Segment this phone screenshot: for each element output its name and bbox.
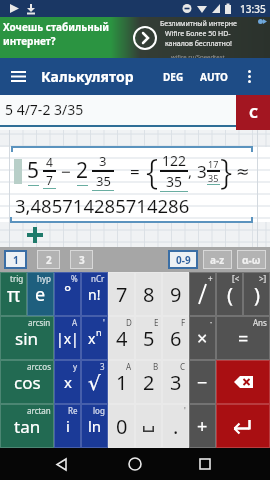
button[interactable]: D: [108, 316, 135, 360]
button[interactable]: +: [189, 404, 216, 448]
button[interactable]: [47, 448, 75, 480]
staticText: }: [220, 148, 233, 194]
staticText: x: [64, 372, 72, 392]
button[interactable]: C: [236, 95, 270, 130]
button[interactable]: [216, 360, 270, 404]
staticText: 3: [99, 152, 107, 170]
staticText: wifire.ru/Speedtest: [171, 53, 225, 60]
staticText: [<: [232, 273, 240, 284]
button[interactable]: [191, 448, 219, 480]
button[interactable]: B: [135, 360, 162, 404]
staticText: Безлимитный интерне: [160, 19, 237, 29]
staticText: 7: [46, 172, 53, 188]
staticText: 6: [170, 325, 182, 352]
staticText: >]: [259, 273, 267, 284]
button[interactable]: ': [81, 316, 108, 360]
staticText: arcsin: [28, 317, 51, 328]
button[interactable]: 2: [37, 250, 60, 269]
staticText: {: [146, 148, 159, 194]
staticText: 1: [13, 253, 19, 267]
staticText: log: [93, 405, 105, 416]
button[interactable]: arctan: [0, 404, 54, 448]
button[interactable]: arccos: [0, 360, 54, 404]
staticText: D: [126, 317, 132, 328]
staticText: α-ω: [242, 253, 261, 267]
button[interactable]: [236, 58, 270, 95]
staticText: 35: [96, 172, 111, 190]
button[interactable]: DEG: [155, 58, 192, 95]
button[interactable]: [135, 404, 162, 448]
staticText: 0: [116, 413, 128, 440]
staticText: +: [197, 414, 208, 439]
staticText: интернет?: [3, 34, 56, 48]
button[interactable]: >]: [243, 272, 270, 316]
button[interactable]: trig: [0, 272, 27, 316]
button[interactable]: Re: [54, 404, 81, 448]
button[interactable]: 3: [70, 250, 93, 269]
staticText: 3: [79, 253, 85, 267]
staticText: 122: [162, 151, 187, 170]
button[interactable]: ': [162, 404, 189, 448]
staticText: 5: [27, 156, 40, 185]
button[interactable]: y: [54, 360, 81, 404]
staticText: nCr: [91, 273, 105, 284]
button[interactable]: +: [189, 272, 216, 316]
button[interactable]: E: [135, 316, 162, 360]
button[interactable]: A: [54, 316, 81, 360]
button[interactable]: [216, 404, 270, 448]
staticText: 5: [143, 325, 155, 352]
button[interactable]: arcsin: [0, 316, 54, 360]
staticText: Хочешь стабильный: [3, 20, 110, 34]
button[interactable]: 0: [108, 404, 135, 448]
staticText: E: [154, 317, 159, 328]
button[interactable]: %: [54, 272, 81, 316]
button[interactable]: F: [162, 316, 189, 360]
staticText: 4: [46, 154, 53, 170]
button[interactable]: 3: [81, 360, 108, 404]
staticText: 0-9: [176, 253, 191, 267]
button[interactable]: nCr: [81, 272, 108, 316]
staticText: 17: [208, 158, 219, 170]
button[interactable]: 1: [4, 250, 27, 269]
staticText: arctan: [27, 405, 51, 416]
staticText: A: [126, 361, 132, 372]
button[interactable]: −: [189, 360, 216, 404]
staticText: −: [197, 370, 208, 395]
button[interactable]: 8: [135, 272, 162, 316]
staticText: Wifire Более 50 HD-: [165, 29, 231, 39]
staticText: 35: [166, 172, 183, 191]
button[interactable]: [0, 58, 37, 95]
staticText: 9: [170, 281, 182, 308]
staticText: n: [96, 326, 102, 338]
staticText: каналов бесплатно!: [165, 39, 232, 49]
staticText: =: [238, 326, 249, 351]
button[interactable]: a-z: [203, 250, 232, 269]
button[interactable]: Ans: [216, 316, 270, 360]
staticText: |x|: [56, 329, 79, 348]
button[interactable]: [121, 448, 149, 480]
button[interactable]: hyp: [27, 272, 54, 316]
staticText: ': [184, 405, 186, 416]
button[interactable]: α-ω: [237, 250, 266, 269]
staticText: ln: [88, 416, 102, 436]
button[interactable]: AUTO: [192, 58, 236, 95]
button[interactable]: Хочешь стабильный: [0, 17, 270, 58]
staticText: C: [249, 103, 258, 122]
staticText: i: [66, 416, 70, 436]
button[interactable]: 0-9: [168, 250, 198, 269]
staticText: ×: [197, 326, 208, 351]
staticText: 3: [170, 369, 182, 396]
staticText: .: [173, 413, 179, 440]
staticText: −: [61, 160, 71, 183]
button[interactable]: ·: [189, 316, 216, 360]
button[interactable]: A: [108, 360, 135, 404]
staticText: √: [88, 371, 101, 394]
button[interactable]: C: [162, 360, 189, 404]
button[interactable]: 7: [108, 272, 135, 316]
button[interactable]: 9: [162, 272, 189, 316]
staticText: Ans: [253, 317, 267, 328]
staticText: C: [180, 361, 186, 372]
button[interactable]: [<: [216, 272, 243, 316]
button[interactable]: log: [81, 404, 108, 448]
staticText: %: [71, 273, 78, 284]
